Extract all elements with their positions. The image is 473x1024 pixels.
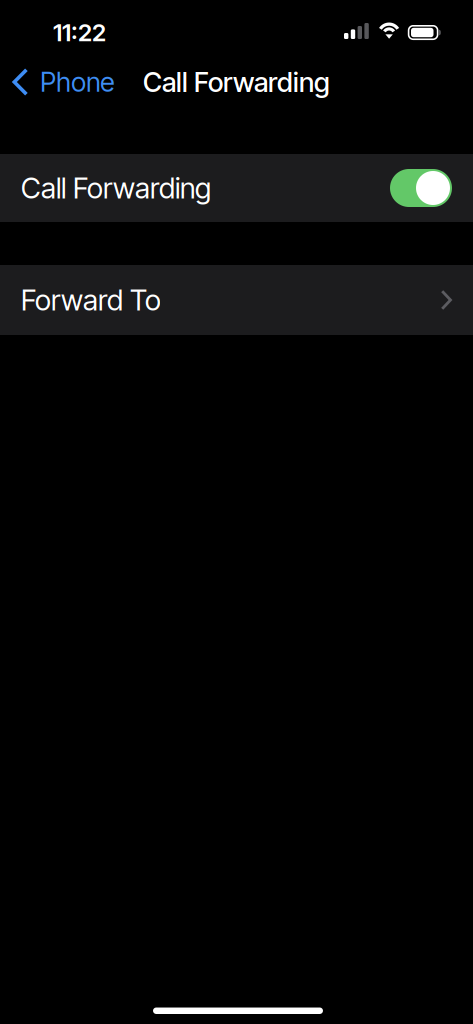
button[interactable]: Forward To (0, 265, 473, 335)
button[interactable]: Call Forwarding, on (390, 169, 452, 207)
staticText: 11:22 (53, 18, 106, 47)
staticText: Call Forwarding (143, 65, 330, 99)
staticText: Forward To (21, 283, 161, 317)
button[interactable]: Phone (0, 60, 124, 104)
button[interactable]: Call Forwarding (0, 154, 473, 222)
staticText: Phone (40, 66, 114, 98)
staticText: Call Forwarding (21, 171, 211, 205)
